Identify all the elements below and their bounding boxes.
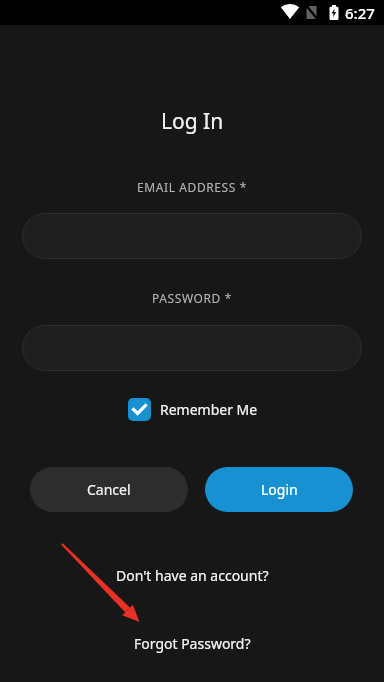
staticText: Don't have an account? [116,566,269,585]
staticText: Cancel [87,480,131,499]
button[interactable]: Cancel [30,467,188,512]
staticText: PASSWORD * [152,290,232,306]
staticText: Log In [161,107,224,136]
button[interactable]: Login [205,467,353,512]
staticText: Forgot Password? [134,634,251,653]
button[interactable] [22,325,362,371]
staticText: 6:27 [345,3,375,23]
button[interactable]: Remember Me [128,398,258,421]
button[interactable]: Don't have an account? [116,566,269,585]
button[interactable] [22,213,362,259]
staticText: Remember Me [160,400,258,419]
staticText: Login [261,480,298,499]
button[interactable]: Forgot Password? [134,634,251,653]
staticText: EMAIL ADDRESS * [137,179,247,195]
